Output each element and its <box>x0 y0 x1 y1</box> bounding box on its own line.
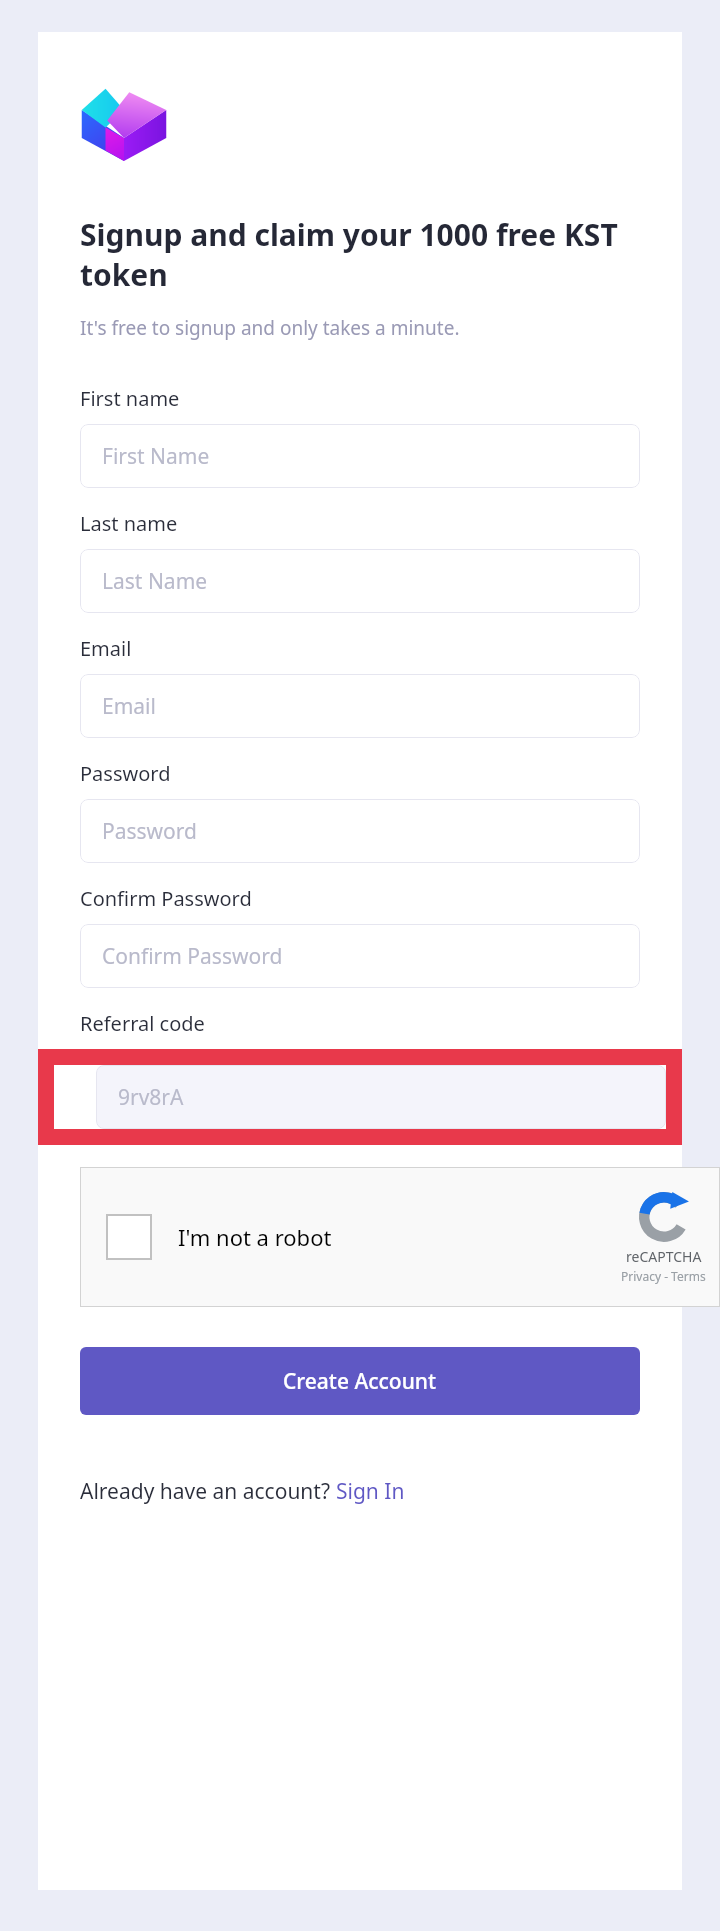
staticText: Last Name <box>102 567 208 596</box>
staticText: I'm not a robot <box>178 1222 332 1252</box>
staticText: Already have an account? <box>80 1477 336 1506</box>
staticText: First Name <box>102 442 210 471</box>
staticText: First name <box>80 385 180 412</box>
button[interactable]: Sign In <box>336 1477 405 1506</box>
staticText: Create Account <box>283 1367 437 1396</box>
button[interactable]: Confirm Password <box>80 924 640 988</box>
staticText: Privacy - Terms <box>621 1268 706 1284</box>
staticText: Email <box>80 635 132 662</box>
staticText: Signup and claim your 1000 free KST toke… <box>80 214 660 295</box>
staticText: Referral code <box>80 1010 205 1037</box>
staticText: Email <box>102 692 156 721</box>
staticText: 9rv8rA <box>118 1083 184 1112</box>
staticText: Confirm Password <box>80 885 252 912</box>
staticText: Confirm Password <box>102 942 283 971</box>
staticText: Last name <box>80 510 178 537</box>
staticText: It's free to signup and only takes a min… <box>80 315 460 341</box>
button[interactable]: 9rv8rA <box>96 1065 666 1129</box>
staticText: Sign In <box>336 1477 405 1506</box>
staticText: Password <box>80 760 171 787</box>
button[interactable]: Last Name <box>80 549 640 613</box>
button[interactable]: Email <box>80 674 640 738</box>
staticText: reCAPTCHA <box>626 1247 702 1266</box>
button[interactable]: Create Account <box>80 1347 640 1415</box>
button[interactable]: I'm not a robot <box>80 1167 720 1307</box>
button[interactable]: Password <box>80 799 640 863</box>
button[interactable]: First Name <box>80 424 640 488</box>
staticText: Password <box>102 817 197 846</box>
